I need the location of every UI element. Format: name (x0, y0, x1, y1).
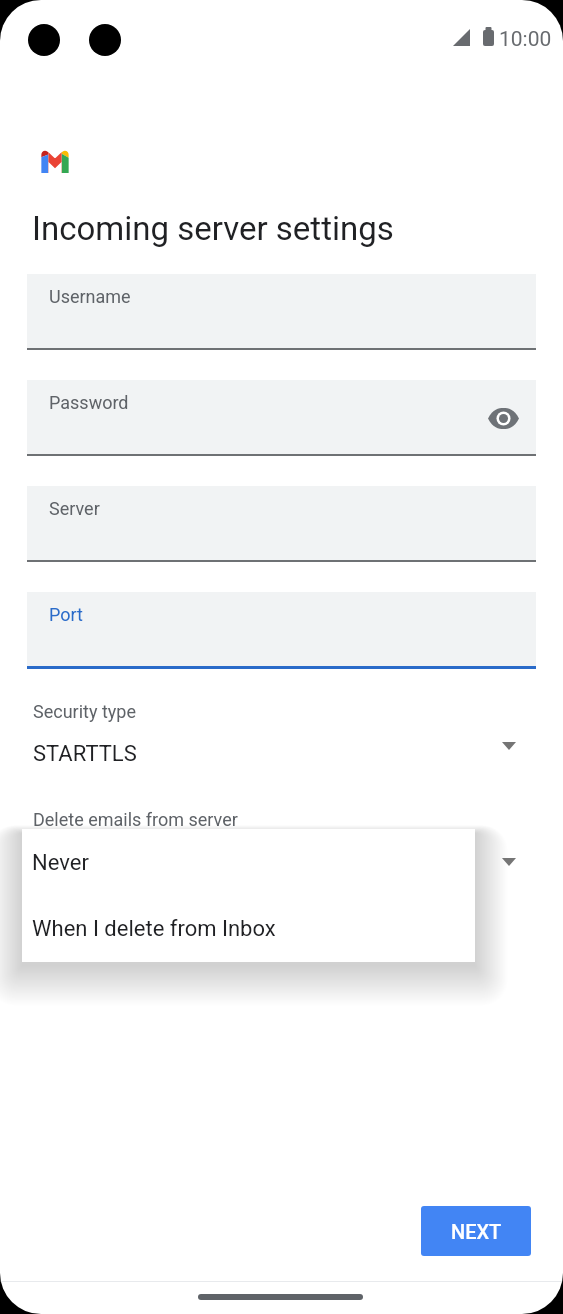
staticText: Never (32, 850, 89, 876)
staticText: Incoming server settings (32, 209, 394, 248)
staticText: Username (49, 286, 131, 307)
staticText: Port (49, 604, 83, 625)
button[interactable]: Never (22, 829, 475, 896)
staticText: Security type (33, 701, 136, 722)
button[interactable]: Password (27, 380, 536, 454)
staticText: STARTTLS (33, 741, 137, 767)
staticText: Server (49, 498, 100, 519)
button[interactable] (27, 799, 536, 887)
button[interactable]: Username (27, 274, 536, 348)
staticText: Password (49, 392, 129, 413)
staticText: NEXT (451, 1220, 502, 1243)
button[interactable]: Show password (485, 400, 521, 436)
button[interactable]: When I delete from Inbox (22, 896, 475, 962)
button[interactable]: Server (27, 486, 536, 560)
staticText: Delete emails from server (33, 809, 238, 830)
button[interactable] (27, 691, 536, 779)
staticText: Never (33, 849, 90, 875)
staticText: When I delete from Inbox (32, 916, 276, 942)
button[interactable]: NEXT (421, 1206, 531, 1256)
staticText: 10:00 (499, 27, 552, 52)
button[interactable]: Port (27, 592, 536, 666)
